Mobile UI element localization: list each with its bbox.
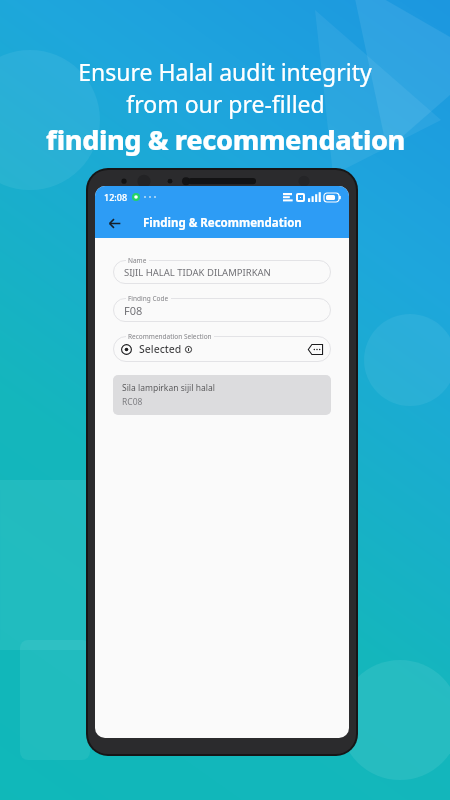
staticText: 12:08: [104, 191, 128, 203]
staticText: RC08: [122, 396, 143, 408]
button[interactable]: Selected: [113, 336, 331, 362]
staticText: Sila lampirkan sijil halal: [122, 382, 215, 394]
button[interactable]: More options: [308, 344, 323, 355]
button[interactable]: Back: [101, 210, 127, 236]
staticText: SIJIL HALAL TIDAK DILAMPIRKAN: [124, 266, 271, 279]
button[interactable]: SIJIL HALAL TIDAK DILAMPIRKAN: [113, 260, 331, 284]
staticText: Selected: [139, 342, 182, 356]
staticText: from our pre-filled: [126, 88, 325, 119]
button[interactable]: Sila lampirkan sijil halal: [113, 375, 331, 415]
staticText: finding & recommendation: [46, 121, 405, 158]
staticText: Name: [128, 256, 147, 265]
staticText: Finding & Recommendation: [143, 215, 302, 231]
staticText: Ensure Halal audit integrity: [78, 56, 372, 87]
button[interactable]: F08: [113, 298, 331, 322]
staticText: Recommendation Selection: [128, 332, 212, 341]
staticText: F08: [124, 303, 143, 318]
staticText: Finding Code: [128, 294, 169, 303]
